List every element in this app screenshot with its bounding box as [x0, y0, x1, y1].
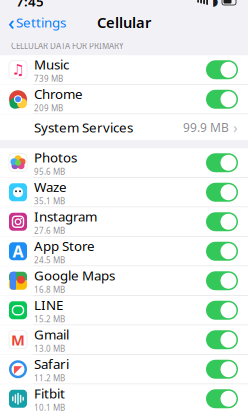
staticText: Google Maps — [34, 267, 115, 284]
staticText: 35.1 MB — [34, 196, 65, 206]
staticText: System Services — [34, 118, 133, 136]
button[interactable]: Google Maps — [0, 266, 248, 295]
staticText: 95.6 MB — [34, 166, 65, 177]
staticText: App Store — [34, 237, 95, 255]
button[interactable]: Photos — [0, 148, 248, 177]
staticText: LINE — [34, 296, 63, 314]
staticText: Fitbit — [34, 385, 65, 402]
staticText: 7:45 — [16, 0, 44, 10]
staticText: Cellular — [97, 12, 151, 32]
button[interactable]: Chrome — [0, 85, 248, 114]
staticText: 13.0 MB — [34, 343, 65, 354]
staticText: Instagram — [34, 208, 97, 225]
staticText: 10.1 MB — [34, 402, 65, 412]
button[interactable]: ◤ — [0, 355, 248, 384]
staticText: 27.6 MB — [34, 225, 65, 236]
button[interactable]: A — [0, 237, 248, 266]
button[interactable]: ‹ — [0, 6, 66, 39]
staticText: 209 MB — [34, 103, 63, 113]
staticText: 99.9 MB — [183, 119, 229, 135]
staticText: › — [233, 117, 238, 137]
staticText: Music — [34, 56, 69, 73]
staticText: 15.2 MB — [34, 314, 65, 324]
staticText: Gmail — [34, 326, 69, 343]
staticText: Waze — [34, 178, 67, 196]
staticText: ◤ — [14, 363, 22, 375]
button[interactable]: Instagram — [0, 207, 248, 236]
button[interactable]: Waze — [0, 178, 248, 207]
staticText: 739 MB — [34, 73, 63, 84]
staticText: Chrome — [34, 85, 83, 103]
staticText: 24.5 MB — [34, 255, 65, 265]
button[interactable]: M — [0, 325, 248, 354]
button[interactable]: Fitbit — [0, 384, 248, 412]
staticText: Photos — [34, 149, 77, 166]
button[interactable]: LINE — [0, 296, 248, 325]
staticText: Safari — [34, 355, 69, 373]
staticText: M — [11, 330, 25, 349]
staticText: 16.8 MB — [34, 284, 65, 295]
button[interactable]: ♫ — [0, 55, 248, 84]
staticText: CELLULAR DATA FOR PRIMARY — [11, 41, 124, 51]
staticText: 11.2 MB — [34, 373, 65, 383]
staticText: ‹ — [8, 9, 15, 36]
staticText: A — [12, 241, 23, 262]
button[interactable]: System Services — [0, 114, 248, 140]
staticText: ♫ — [11, 61, 24, 78]
staticText: ◗ — [212, 0, 218, 8]
staticText: Settings — [16, 13, 66, 31]
